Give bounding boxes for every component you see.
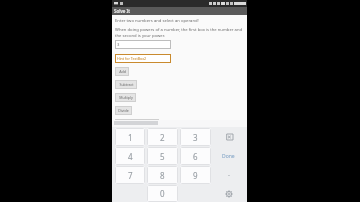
staticText: 4 (128, 151, 133, 162)
button[interactable]: Multiply (115, 93, 136, 102)
staticText: 7 (128, 170, 133, 181)
button[interactable]: Backspace (213, 128, 244, 146)
button[interactable]: Done (213, 147, 244, 165)
button[interactable]: 9 (180, 166, 211, 184)
button[interactable]: 5 (147, 147, 178, 165)
button[interactable]: Divide (115, 106, 132, 115)
button[interactable]: 0 (147, 185, 178, 202)
staticText: - (228, 171, 230, 179)
button[interactable]: 7 (115, 166, 145, 184)
staticText: 2 (160, 132, 165, 143)
staticText: Add (119, 69, 126, 74)
button[interactable]: 3 (115, 40, 171, 49)
staticText: 3 (117, 42, 120, 48)
staticText: Subtract (119, 82, 134, 87)
button[interactable]: 6 (180, 147, 211, 165)
button[interactable]: Add (115, 67, 129, 76)
staticText: Number to a power (121, 121, 154, 126)
staticText: Done (222, 153, 235, 160)
button[interactable]: Hint for TextBox2 (115, 54, 171, 63)
staticText: 8 (160, 170, 165, 181)
button[interactable]: 8 (147, 166, 178, 184)
staticText: Multiply (119, 95, 133, 100)
staticText: 1 (128, 132, 133, 143)
staticText: 5 (160, 151, 165, 162)
staticText: Divide (118, 108, 129, 113)
staticText: When doing powers of a number, the first… (115, 27, 244, 38)
button[interactable]: 1 (115, 128, 145, 146)
button[interactable]: 4 (115, 147, 145, 165)
staticText: Hint for TextBox2 (117, 56, 147, 61)
button[interactable]: 2 (147, 128, 178, 146)
button[interactable]: Subtract (115, 80, 137, 89)
staticText: Enter two numbers and select an operand! (115, 18, 199, 24)
staticText: Solve It (114, 8, 130, 14)
staticText: 3 (193, 132, 198, 143)
button[interactable]: Keyboard settings (213, 185, 244, 202)
button[interactable]: 3 (180, 128, 211, 146)
staticText: 9 (193, 170, 198, 181)
button[interactable]: Number to a power (115, 119, 159, 128)
staticText: 6 (193, 151, 198, 162)
staticText: 0 (160, 188, 165, 199)
button[interactable]: Solve It (112, 7, 247, 15)
